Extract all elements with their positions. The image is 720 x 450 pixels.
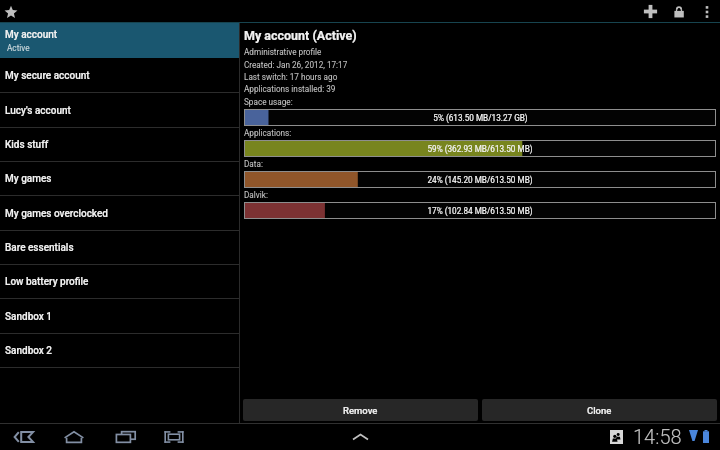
staticText: Last switch: 17 hours ago bbox=[244, 72, 338, 82]
staticText: 24% (145.20 MB/613.50 MB) bbox=[427, 175, 533, 185]
button[interactable]: Back bbox=[10, 423, 38, 449]
button[interactable]: Remove bbox=[243, 399, 478, 421]
button[interactable]: Recent apps bbox=[112, 423, 140, 449]
staticText: My games overclocked bbox=[5, 208, 108, 220]
button[interactable]: Bare essentials bbox=[0, 231, 239, 265]
button[interactable]: Show notifications bbox=[343, 424, 377, 450]
staticText: Kids stuff bbox=[5, 139, 49, 151]
staticText: My games bbox=[5, 173, 52, 185]
staticText: My account (Active) bbox=[244, 28, 357, 43]
button[interactable]: Sandbox 2 bbox=[0, 334, 239, 368]
button[interactable]: More options bbox=[694, 0, 720, 23]
staticText: Sandbox 2 bbox=[5, 345, 53, 357]
staticText: Active bbox=[7, 43, 30, 53]
button[interactable]: Sandbox 1 bbox=[0, 299, 239, 334]
button[interactable]: Lucy's account bbox=[0, 93, 239, 128]
button[interactable]: Add bbox=[637, 0, 664, 23]
button[interactable]: Lock bbox=[665, 0, 692, 23]
button[interactable]: Favorite bbox=[0, 0, 21, 23]
button[interactable]: Screenshot bbox=[160, 423, 188, 449]
staticText: Bare essentials bbox=[5, 242, 74, 254]
staticText: Created: Jan 26, 2012, 17:17 bbox=[244, 60, 348, 70]
staticText: Space usage: bbox=[244, 97, 293, 107]
staticText: Data: bbox=[244, 159, 263, 169]
staticText: My secure account bbox=[5, 70, 90, 82]
button[interactable]: Home bbox=[60, 423, 88, 449]
staticText: My account bbox=[5, 29, 58, 41]
staticText: 59% (362.93 MB/613.50 MB) bbox=[427, 144, 533, 154]
staticText: 5% (613.50 MB/13.27 GB) bbox=[433, 113, 528, 123]
staticText: Applications: bbox=[244, 128, 292, 138]
button[interactable]: My games bbox=[0, 162, 239, 196]
staticText: Lucy's account bbox=[5, 105, 71, 117]
staticText: Low battery profile bbox=[5, 276, 89, 288]
staticText: Clone bbox=[587, 405, 612, 416]
button[interactable]: Low battery profile bbox=[0, 265, 239, 299]
staticText: 14:58 bbox=[633, 425, 682, 448]
staticText: Remove bbox=[343, 405, 378, 416]
button[interactable]: Clone bbox=[482, 399, 717, 421]
button[interactable]: My account bbox=[0, 23, 239, 58]
staticText: Applications installed: 39 bbox=[244, 84, 336, 94]
button[interactable]: My games overclocked bbox=[0, 196, 239, 231]
staticText: Administrative profile bbox=[244, 47, 322, 57]
staticText: 17% (102.84 MB/613.50 MB) bbox=[427, 206, 533, 216]
staticText: Dalvik: bbox=[244, 190, 268, 200]
button[interactable]: Kids stuff bbox=[0, 128, 239, 162]
staticText: Sandbox 1 bbox=[5, 311, 53, 323]
button[interactable]: My secure account bbox=[0, 58, 239, 93]
